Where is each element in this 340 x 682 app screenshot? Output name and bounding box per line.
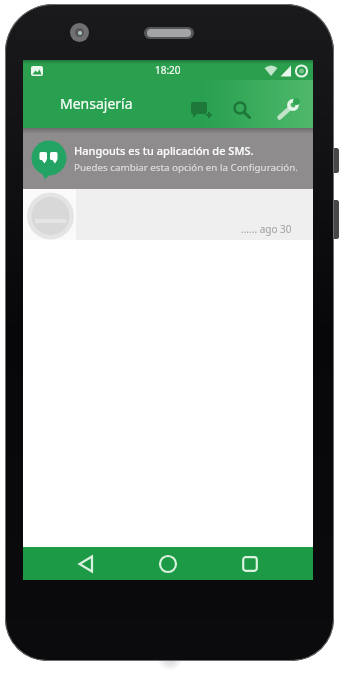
button[interactable]: [272, 94, 304, 126]
button[interactable]: Hangouts es tu aplicación de SMS.: [23, 128, 313, 189]
button[interactable]: [225, 547, 275, 580]
button[interactable]: [61, 547, 111, 580]
staticText: ...... ago 30: [241, 222, 292, 236]
staticText: 18:20: [155, 63, 181, 77]
button[interactable]: [143, 547, 193, 580]
button[interactable]: [226, 94, 258, 126]
button[interactable]: ...... ago 30: [23, 189, 313, 240]
button[interactable]: [185, 94, 217, 126]
staticText: Mensajería: [60, 94, 133, 113]
staticText: Hangouts es tu aplicación de SMS.: [74, 143, 254, 158]
staticText: Puedes cambiar esta opción en la Configu…: [74, 161, 298, 174]
